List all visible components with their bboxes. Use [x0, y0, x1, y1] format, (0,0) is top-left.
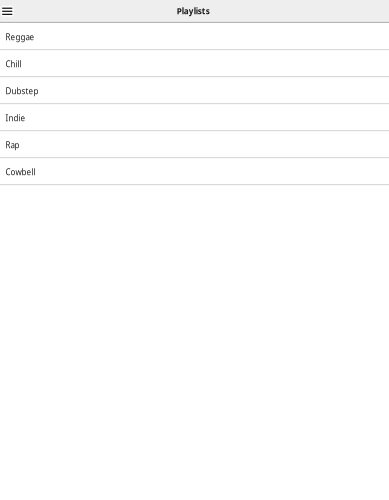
staticText: Dubstep — [5, 86, 38, 97]
staticText: Rap — [5, 140, 19, 151]
staticText: Indie — [5, 113, 25, 124]
staticText: Chill — [5, 59, 21, 70]
button[interactable]: Reggae — [0, 23, 389, 50]
staticText: Playlists — [177, 5, 210, 17]
button[interactable]: Menu — [0, 0, 16, 23]
button[interactable]: Indie — [0, 104, 389, 131]
button[interactable]: Rap — [0, 131, 389, 158]
button[interactable]: Chill — [0, 50, 389, 77]
staticText: Cowbell — [5, 167, 35, 178]
staticText: Reggae — [5, 32, 34, 43]
button[interactable]: Dubstep — [0, 77, 389, 104]
button[interactable]: Cowbell — [0, 158, 389, 185]
